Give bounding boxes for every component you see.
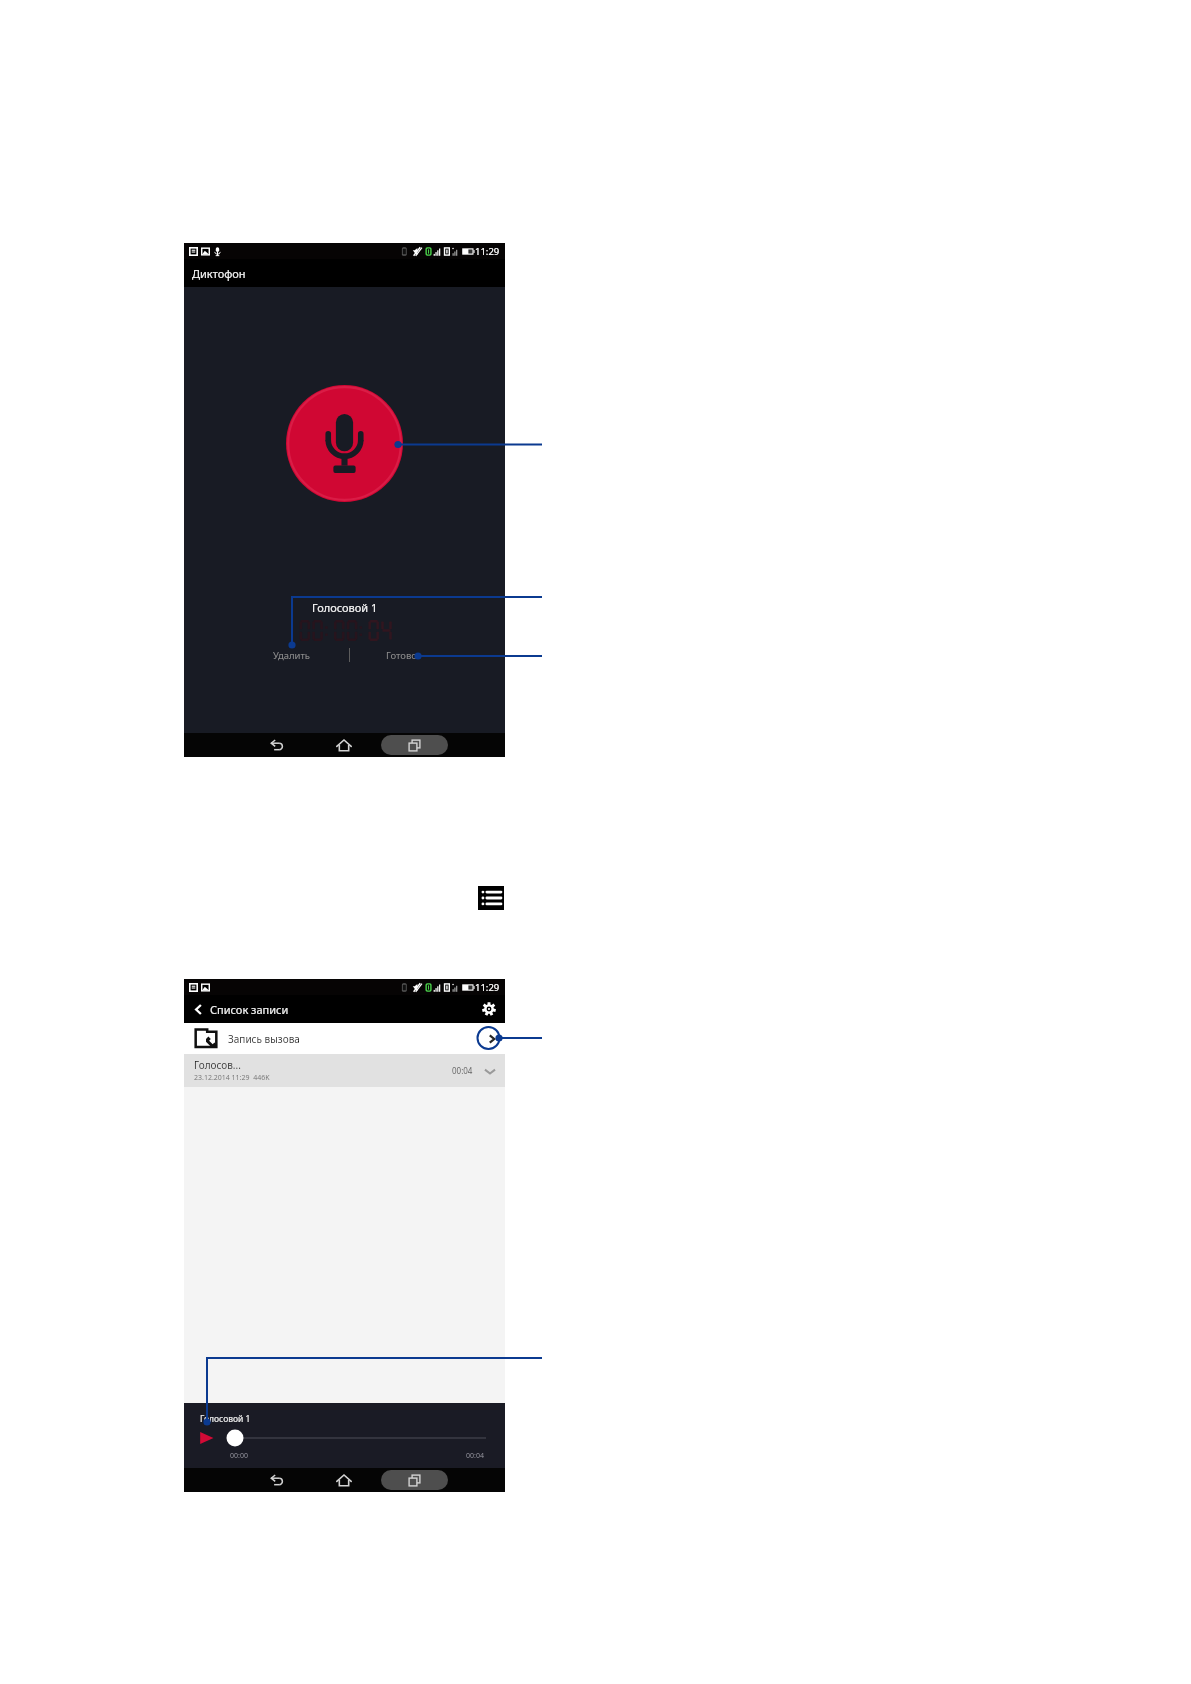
button[interactable]: Запись вызова	[184, 1023, 505, 1054]
staticText: Диктофон	[192, 266, 246, 281]
staticText: Голосовой 1	[200, 1413, 251, 1425]
button[interactable]: Settings	[482, 1002, 496, 1016]
button[interactable]: Готово	[350, 644, 452, 666]
button[interactable]: Home	[335, 1471, 353, 1489]
button[interactable]: Голосов...	[184, 1054, 505, 1087]
staticText: 00:04	[452, 1065, 473, 1076]
staticText: Голосовой 1	[312, 600, 378, 615]
staticText: Список записи	[210, 1002, 289, 1017]
staticText: 11:29	[475, 245, 500, 258]
button[interactable]: Recents	[381, 1470, 448, 1490]
button[interactable]: Record	[286, 385, 403, 502]
button[interactable]: Удалить	[226, 644, 357, 666]
button[interactable]: Back	[268, 736, 286, 754]
button[interactable]: Recording list	[478, 886, 504, 910]
staticText: 00:00	[230, 1451, 248, 1461]
staticText: Голосов...	[194, 1058, 241, 1072]
staticText: Готово	[386, 649, 417, 662]
button[interactable]: Back	[268, 1471, 286, 1489]
button[interactable]: Home	[335, 736, 353, 754]
staticText: 11:29	[475, 981, 500, 994]
button[interactable]: Recents	[381, 735, 448, 755]
button[interactable]: Play	[198, 1429, 216, 1447]
staticText: Удалить	[273, 649, 311, 662]
button[interactable]: Back	[191, 1002, 206, 1017]
staticText: 23.12.2014 11:29 446K	[194, 1073, 270, 1083]
staticText: Запись вызова	[228, 1032, 300, 1046]
other: Open	[485, 1032, 499, 1046]
staticText: 00:04	[466, 1451, 484, 1461]
